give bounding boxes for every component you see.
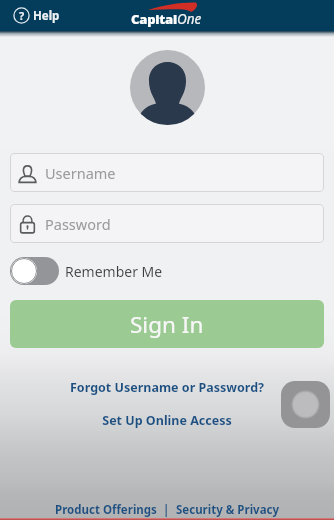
button[interactable]: Set Up Online Access [0,412,334,429]
staticText: Sign In [130,309,204,340]
staticText: Capital [131,10,177,28]
staticText: Username [45,163,116,183]
button[interactable]: ? [13,0,60,31]
button[interactable]: Password [10,204,324,243]
button[interactable]: Username [10,153,324,192]
staticText: Remember Me [65,262,163,281]
button[interactable]: Sign In [10,300,324,348]
button[interactable]: Forgot Username or Password? [0,379,334,396]
button[interactable]: Remember Me toggle [10,257,59,285]
button[interactable]: Security & Privacy [176,502,280,518]
button[interactable]: Product Offerings [55,502,157,518]
staticText: Password [45,214,111,234]
button[interactable]: Accessibility menu [281,381,330,428]
staticText: Help [33,8,60,24]
staticText: One [177,10,202,28]
staticText: | [157,502,176,518]
staticText: ? [19,8,25,23]
